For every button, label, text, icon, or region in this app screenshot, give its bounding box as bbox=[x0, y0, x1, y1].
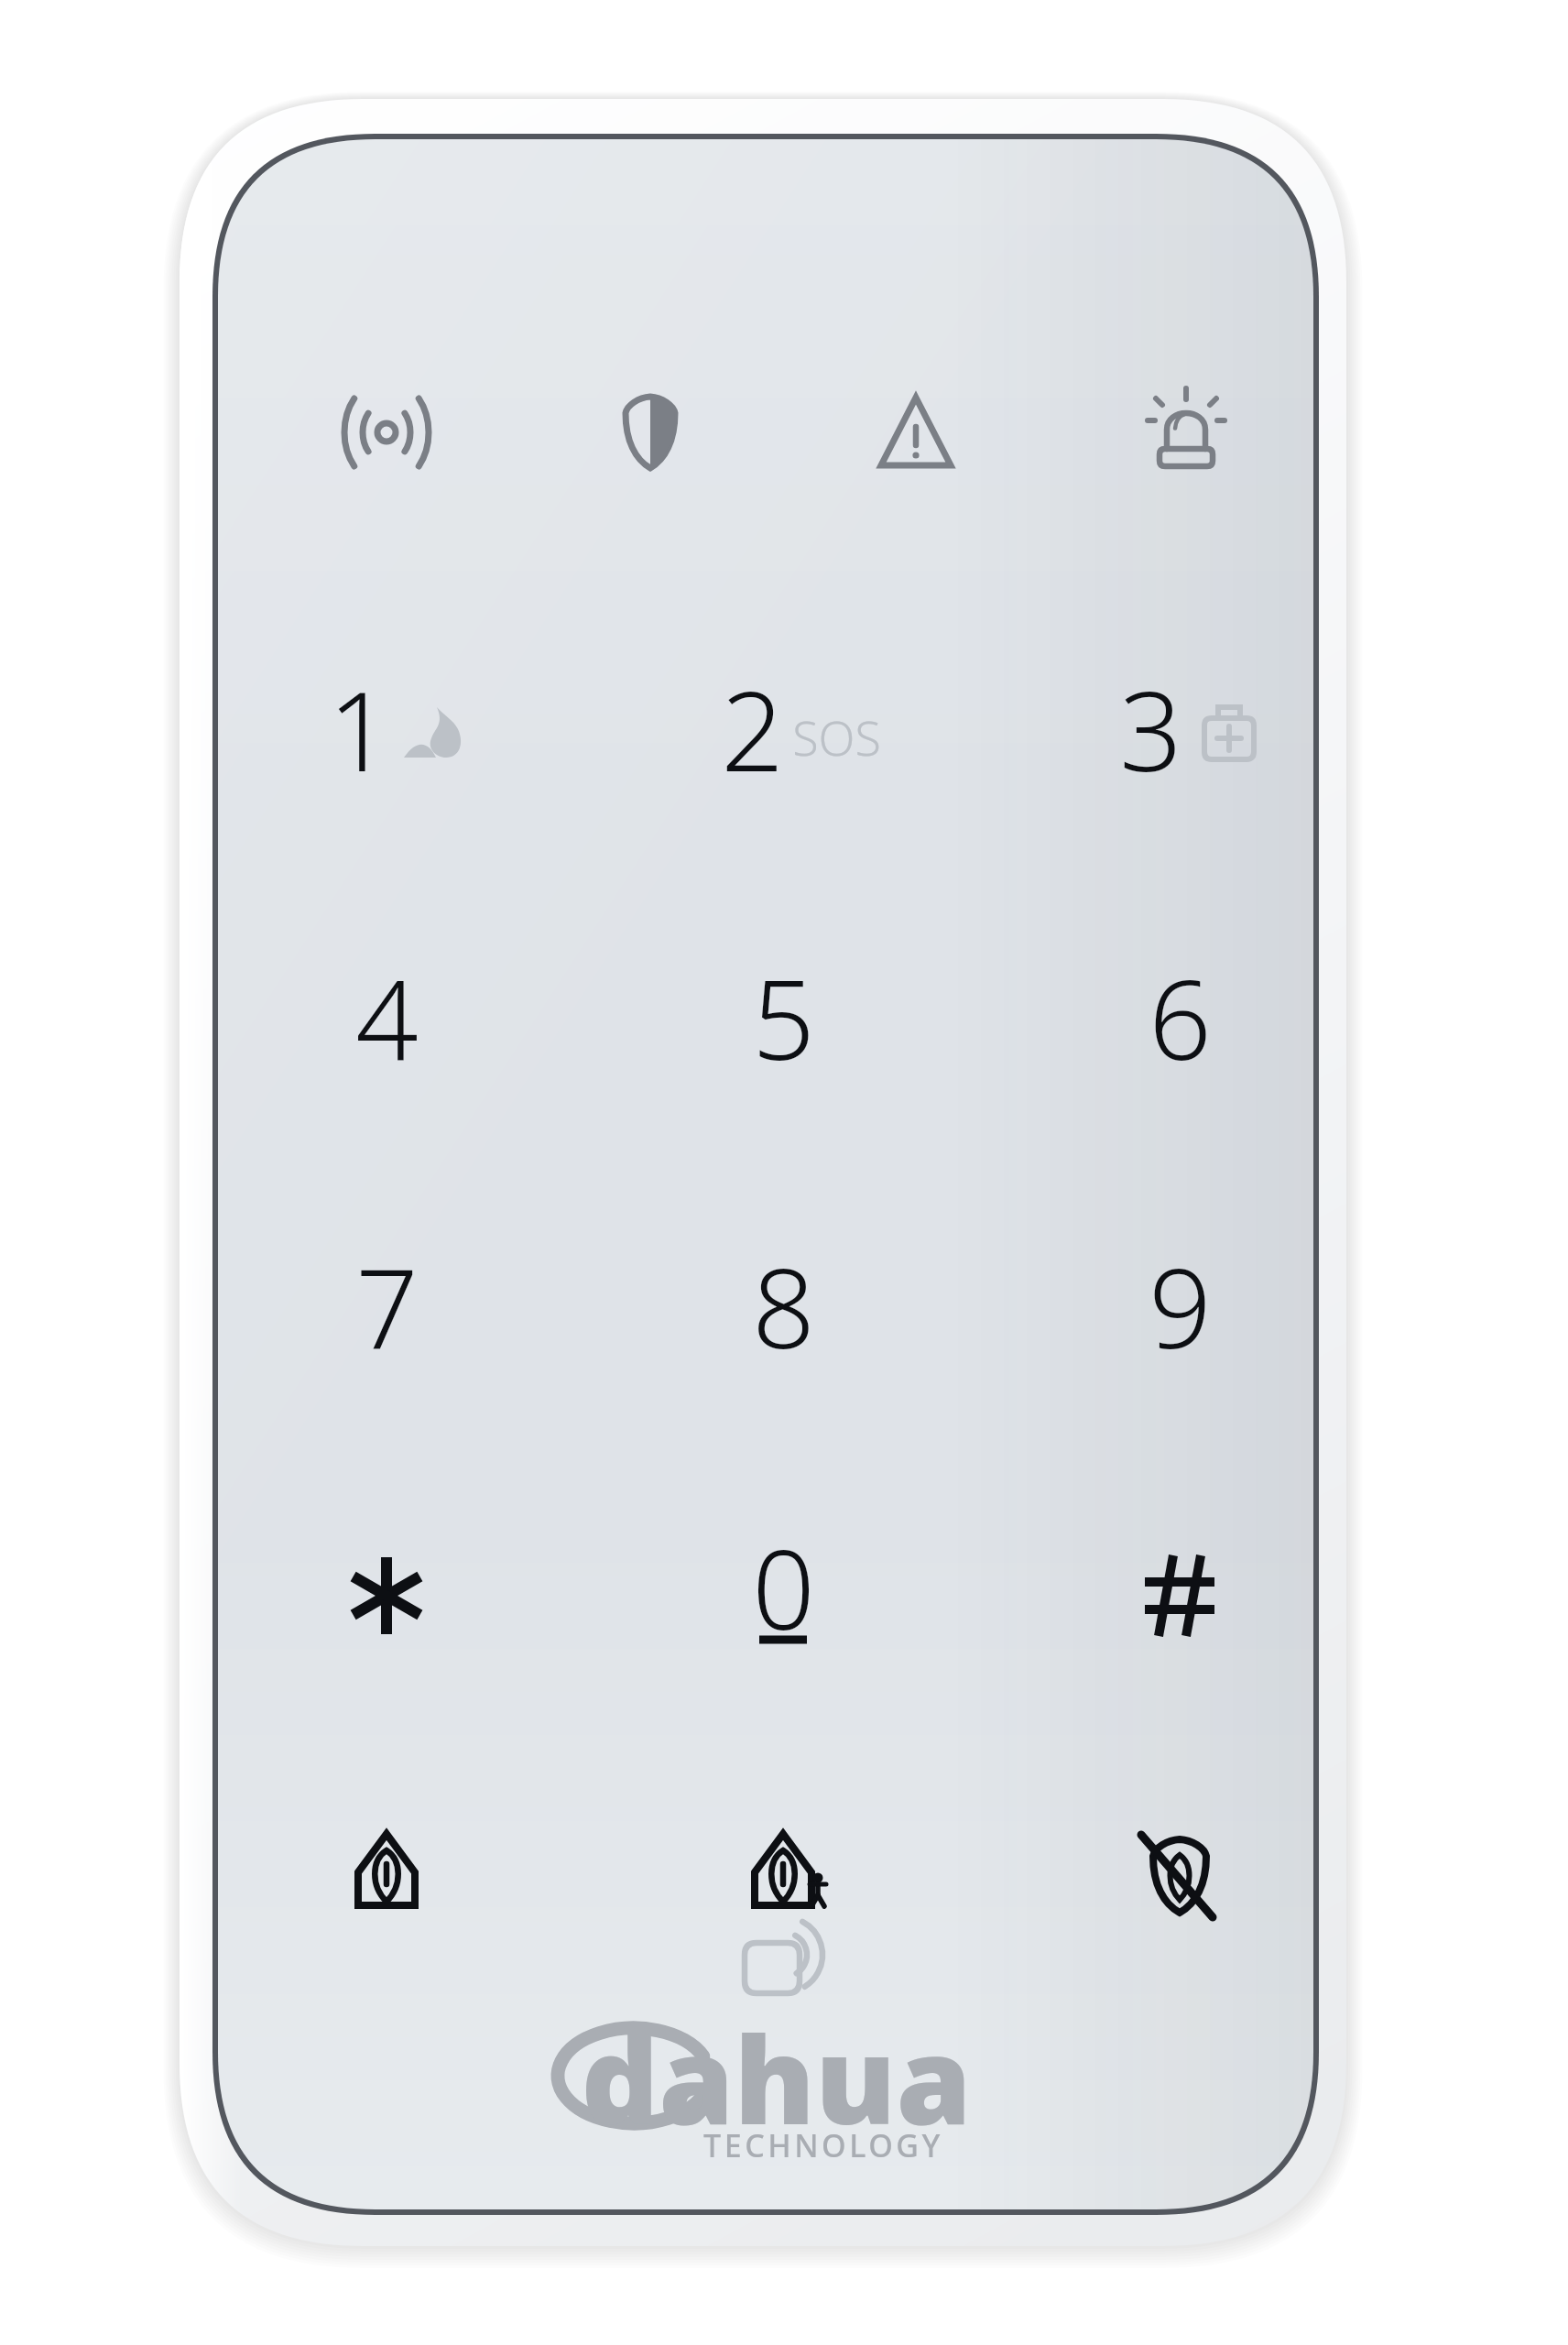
button[interactable]: Key 2, SOS bbox=[637, 614, 930, 843]
button[interactable]: Key 8 bbox=[637, 1191, 930, 1420]
staticText: 2 bbox=[721, 654, 784, 803]
staticText: dahua bbox=[581, 1995, 972, 2160]
button[interactable]: Key 0 bbox=[637, 1481, 930, 1710]
staticText: 6 bbox=[1149, 943, 1212, 1092]
button[interactable]: Key 3, medical alarm bbox=[1033, 614, 1326, 843]
button[interactable]: Card reader area bbox=[696, 1899, 870, 2036]
button[interactable]: Key 6 bbox=[1033, 902, 1326, 1131]
button[interactable]: Arm home bbox=[696, 1798, 870, 1954]
staticText: 9 bbox=[1149, 1231, 1212, 1380]
button[interactable]: Key hash bbox=[1033, 1481, 1326, 1710]
button[interactable]: Key 4 bbox=[240, 902, 533, 1131]
staticText: TECHNOLOGY bbox=[703, 2124, 943, 2166]
staticText: 4 bbox=[355, 943, 419, 1092]
staticText: SOS bbox=[792, 704, 881, 769]
button[interactable]: Alarm siren status bbox=[1108, 364, 1264, 501]
staticText: 8 bbox=[752, 1231, 815, 1380]
button[interactable]: Key star bbox=[240, 1481, 533, 1710]
button[interactable]: Key 5 bbox=[637, 902, 930, 1131]
button[interactable]: Arm away bbox=[299, 1798, 474, 1954]
button[interactable]: Key 1, fire alarm bbox=[240, 614, 533, 843]
button[interactable]: Armed status bbox=[572, 364, 728, 501]
button[interactable]: Wireless signal status bbox=[309, 364, 464, 501]
staticText: 3 bbox=[1119, 654, 1182, 803]
staticText: 1 bbox=[328, 654, 391, 803]
staticText: 7 bbox=[355, 1231, 419, 1380]
button[interactable]: Key 9 bbox=[1033, 1191, 1326, 1420]
staticText: 5 bbox=[752, 943, 815, 1092]
button[interactable]: Disarm bbox=[1093, 1798, 1267, 1954]
button[interactable]: Key 7 bbox=[240, 1191, 533, 1420]
staticText: 0 bbox=[752, 1512, 815, 1662]
button[interactable]: Fault warning status bbox=[838, 364, 994, 501]
